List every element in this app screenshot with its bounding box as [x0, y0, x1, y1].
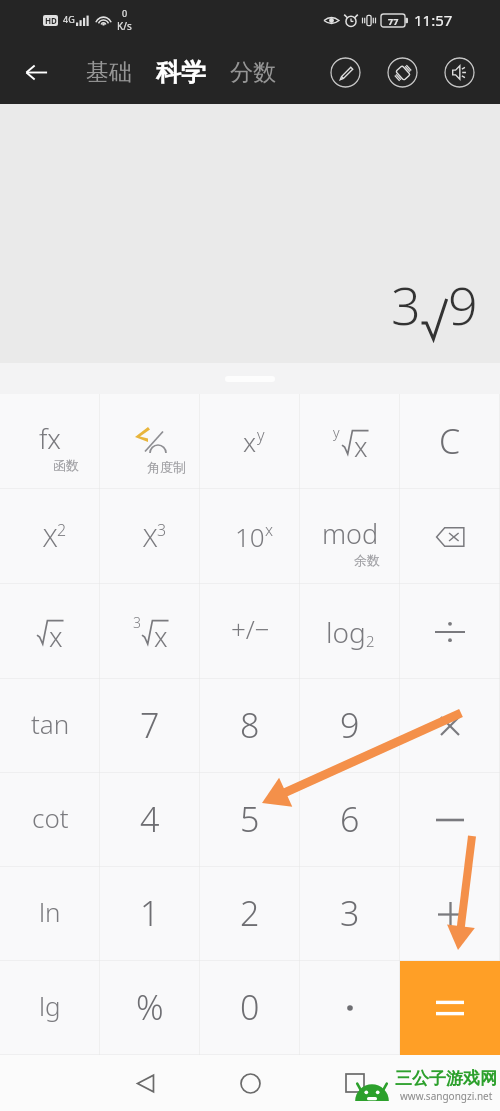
button[interactable]: cot	[0, 773, 100, 867]
staticText: 6	[340, 796, 360, 842]
staticText: 10	[235, 519, 265, 554]
button[interactable]: Home	[226, 1059, 274, 1107]
button[interactable]: 6	[300, 773, 400, 867]
staticText: 角度制	[147, 459, 186, 475]
staticText: 2	[240, 890, 260, 936]
button[interactable]	[300, 961, 400, 1055]
staticText: tan	[31, 706, 70, 741]
staticText: 3	[340, 890, 360, 936]
staticText: 函数	[53, 457, 79, 473]
button[interactable]	[400, 489, 500, 584]
button[interactable]: log	[300, 584, 400, 679]
button[interactable]: 1	[100, 867, 200, 961]
button[interactable]	[400, 867, 500, 961]
staticText: 5	[240, 796, 260, 842]
button[interactable]: Back	[121, 1059, 169, 1107]
button[interactable]: Edit	[330, 57, 361, 88]
button[interactable]: lg	[0, 961, 100, 1055]
staticText: K/s	[117, 19, 132, 33]
staticText: +/−	[231, 611, 270, 646]
button[interactable]: Vibrate	[387, 57, 418, 88]
button[interactable]: 5	[200, 773, 300, 867]
button[interactable]: 分数	[218, 48, 288, 97]
staticText: 9	[448, 269, 478, 340]
button[interactable]: C	[400, 394, 500, 489]
staticText: 2	[366, 631, 375, 651]
button[interactable]: Sound	[444, 57, 475, 88]
button[interactable]: 9	[300, 679, 400, 773]
staticText: 0	[240, 984, 260, 1030]
staticText: x	[154, 618, 168, 655]
button[interactable]: Back	[14, 50, 58, 94]
staticText: x	[239, 424, 253, 459]
staticText: 7	[140, 702, 160, 748]
staticText: X	[38, 519, 53, 554]
staticText: 8	[240, 702, 260, 748]
button[interactable]: Recents	[331, 1059, 379, 1107]
button[interactable]: 角度制	[100, 394, 200, 489]
button[interactable]: tan	[0, 679, 100, 773]
button[interactable]: 0	[200, 961, 300, 1055]
staticText: www.sangongzi.net	[400, 1089, 493, 1103]
staticText: y	[333, 423, 340, 442]
staticText: 3	[391, 269, 421, 340]
staticText: y	[257, 424, 265, 446]
button[interactable]: 7	[100, 679, 200, 773]
button[interactable]: ln	[0, 867, 100, 961]
button[interactable]	[400, 679, 500, 773]
staticText: 77	[388, 15, 399, 27]
staticText: x	[265, 519, 274, 541]
button[interactable]: x	[200, 394, 300, 489]
button[interactable]: 10	[200, 489, 300, 584]
staticText: 11:57	[414, 10, 453, 30]
staticText: 分数	[230, 58, 276, 87]
staticText: mod	[322, 515, 379, 552]
staticText: HD	[45, 15, 57, 26]
staticText: 3	[133, 613, 141, 632]
staticText: 基础	[86, 58, 132, 87]
staticText: %	[136, 984, 164, 1030]
staticText: x	[243, 424, 257, 459]
button[interactable]: +/−	[200, 584, 300, 679]
staticText: X	[143, 519, 158, 554]
button[interactable]: x	[0, 584, 100, 679]
button[interactable]: X	[0, 489, 100, 584]
staticText: 4	[140, 796, 160, 842]
button[interactable]: 8	[200, 679, 300, 773]
button[interactable]	[400, 773, 500, 867]
staticText: x	[49, 618, 63, 655]
button[interactable]: 基础	[74, 48, 144, 97]
button[interactable]: x	[100, 584, 200, 679]
staticText: X	[43, 519, 58, 554]
button[interactable]: X	[100, 489, 200, 584]
button[interactable]: x	[300, 394, 400, 489]
staticText: ln	[39, 894, 61, 929]
staticText: 三公子游戏网	[395, 1068, 497, 1089]
staticText: X	[138, 519, 153, 554]
staticText: 3	[157, 519, 167, 541]
staticText: log	[326, 613, 366, 651]
staticText: C	[439, 418, 461, 464]
staticText: fx	[39, 420, 61, 457]
staticText: lg	[39, 988, 61, 1023]
staticText: 4G	[63, 13, 75, 25]
staticText: cot	[32, 800, 69, 835]
staticText: 科学	[156, 57, 206, 88]
button[interactable]: %	[100, 961, 200, 1055]
staticText: 1	[140, 890, 160, 936]
staticText: 余数	[354, 552, 380, 568]
button[interactable]: mod	[300, 489, 400, 584]
staticText: 0	[122, 7, 128, 19]
button[interactable]: Equals	[400, 961, 500, 1055]
button[interactable]: 科学	[144, 47, 218, 98]
button[interactable]: fx	[0, 394, 100, 489]
button[interactable]: 3	[300, 867, 400, 961]
staticText: x	[354, 428, 368, 465]
button[interactable]	[400, 584, 500, 679]
staticText: 2	[57, 519, 67, 541]
staticText: 10	[231, 519, 261, 554]
staticText: 9	[340, 702, 360, 748]
button[interactable]: 4	[100, 773, 200, 867]
button[interactable]: 2	[200, 867, 300, 961]
